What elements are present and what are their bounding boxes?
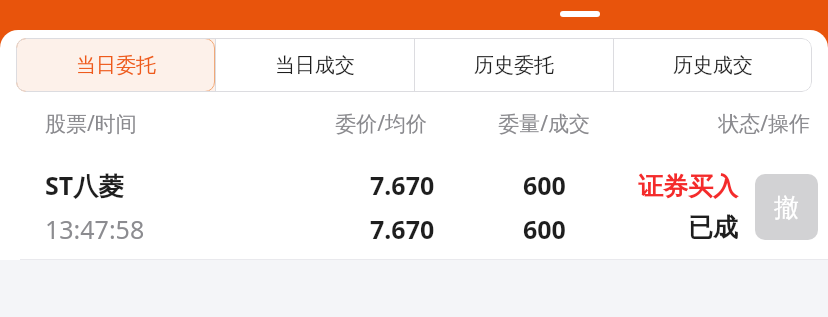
staticText: ST八菱 xyxy=(45,168,124,202)
staticText: 历史成交 xyxy=(673,53,753,78)
staticText: 委量/成交 xyxy=(427,109,590,138)
button[interactable]: ST八菱 xyxy=(0,154,828,259)
staticText: 证券买入 xyxy=(638,171,738,202)
staticText: 状态/操作 xyxy=(590,109,810,138)
button[interactable]: 历史成交 xyxy=(614,38,812,92)
button[interactable]: 撤单 xyxy=(755,174,818,240)
staticText: 委价/均价 xyxy=(236,109,427,138)
staticText: 股票/时间 xyxy=(45,109,236,138)
staticText: 13:47:58 xyxy=(45,212,145,246)
button[interactable]: 历史委托 xyxy=(415,38,613,92)
staticText: 7.670 xyxy=(370,168,435,202)
button[interactable]: 当日成交 xyxy=(216,38,414,92)
button[interactable]: 当日委托 xyxy=(16,38,215,92)
staticText: 600 xyxy=(523,168,566,202)
staticText: 撤 xyxy=(774,192,799,223)
staticText: 7.670 xyxy=(370,212,435,246)
staticText: 当日成交 xyxy=(275,53,355,78)
staticText: 历史委托 xyxy=(474,53,554,78)
staticText: 已成 xyxy=(688,212,738,243)
staticText: 当日委托 xyxy=(76,53,156,78)
staticText: 600 xyxy=(523,212,566,246)
